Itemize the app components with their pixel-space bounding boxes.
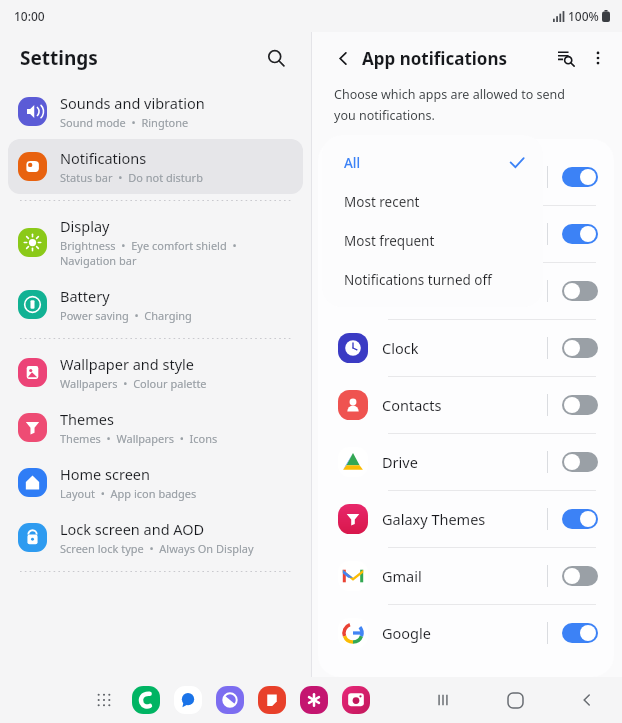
button[interactable]: All xyxy=(322,143,543,182)
button[interactable]: Home screen xyxy=(8,455,303,510)
button[interactable]: Back xyxy=(328,43,358,73)
button[interactable]: Most frequent xyxy=(322,221,543,260)
staticText: Status bar • Do not disturb xyxy=(60,170,203,185)
button[interactable]: phone xyxy=(132,686,160,714)
staticText: Display xyxy=(60,216,110,236)
staticText: Sounds and vibration xyxy=(60,93,205,113)
button[interactable]: Toggle xyxy=(562,281,598,301)
button[interactable]: Themes xyxy=(8,400,303,455)
button[interactable]: Contacts xyxy=(318,377,614,433)
button[interactable]: flower xyxy=(300,686,328,714)
button[interactable]: Lock screen and AOD xyxy=(8,510,303,565)
staticText: Most recent xyxy=(344,193,525,211)
button[interactable]: Display xyxy=(8,207,303,277)
staticText: Themes • Wallpapers • Icons xyxy=(60,431,218,446)
staticText: Contacts xyxy=(382,395,547,415)
button[interactable]: insta xyxy=(342,686,370,714)
button[interactable]: App drawer xyxy=(90,686,118,714)
staticText: Sound mode • Ringtone xyxy=(60,115,189,130)
staticText: Camera xyxy=(382,224,547,244)
staticText: Drive xyxy=(382,452,547,472)
button[interactable]: Sounds and vibration xyxy=(8,84,303,139)
button[interactable]: internet xyxy=(216,686,244,714)
button[interactable]: Galaxy Themes xyxy=(318,491,614,547)
button[interactable]: files xyxy=(258,686,286,714)
staticText: Most frequent xyxy=(344,232,525,250)
staticText: Brightness • Eye comfort shield • Naviga… xyxy=(60,238,237,268)
staticText: Power saving • Charging xyxy=(60,308,192,323)
staticText: All xyxy=(344,154,509,172)
button[interactable]: messages xyxy=(174,686,202,714)
button[interactable]: Search xyxy=(259,41,293,75)
staticText: Notifications turned off xyxy=(344,271,525,289)
button[interactable]: Toggle xyxy=(562,623,598,643)
staticText: Wallpaper and style xyxy=(60,354,194,374)
staticText: Home screen xyxy=(60,464,150,484)
button[interactable]: Toggle xyxy=(562,167,598,187)
button[interactable]: Back xyxy=(572,685,602,715)
staticText: Wallpapers • Colour palette xyxy=(60,376,207,391)
button[interactable]: Notifications turned off xyxy=(322,260,543,299)
button[interactable]: Battery xyxy=(8,277,303,332)
staticText: Choose which apps are allowed to send yo… xyxy=(334,86,582,123)
button[interactable]: Most recent xyxy=(322,182,543,221)
staticText: Gmail xyxy=(382,566,547,586)
staticText: Battery xyxy=(60,286,110,306)
button[interactable]: Notifications xyxy=(8,139,303,194)
button[interactable]: Toggle xyxy=(562,566,598,586)
staticText: 10:00 xyxy=(14,8,45,24)
staticText: Layout • App icon badges xyxy=(60,486,197,501)
button[interactable]: Toggle xyxy=(562,224,598,244)
button[interactable]: Camera xyxy=(318,206,614,262)
staticText: Clock xyxy=(382,338,547,358)
button[interactable]: Google xyxy=(318,605,614,661)
staticText: Chrome xyxy=(382,281,547,301)
staticText: Google xyxy=(382,623,547,643)
button[interactable]: Clock xyxy=(318,320,614,376)
staticText: Notifications xyxy=(60,148,147,168)
staticText: Screen lock type • Always On Display xyxy=(60,541,254,556)
staticText: Galaxy Themes xyxy=(382,509,547,529)
button[interactable]: Chrome xyxy=(318,263,614,319)
staticText: Themes xyxy=(60,409,114,429)
staticText: App notifications xyxy=(362,47,508,70)
button[interactable]: Search in list xyxy=(550,42,582,74)
button[interactable]: Recents xyxy=(428,685,458,715)
button[interactable]: Toggle xyxy=(562,338,598,358)
button[interactable]: Wallpaper and style xyxy=(8,345,303,400)
button[interactable]: Toggle xyxy=(562,452,598,472)
button[interactable]: More options xyxy=(582,42,614,74)
staticText: Settings xyxy=(20,45,98,71)
button[interactable]: Drive xyxy=(318,434,614,490)
staticText: 100% xyxy=(568,8,599,24)
button[interactable]: Gmail xyxy=(318,548,614,604)
staticText: Lock screen and AOD xyxy=(60,519,205,539)
staticText: Calendar xyxy=(382,167,547,187)
button[interactable]: Toggle xyxy=(562,509,598,529)
button[interactable]: Home xyxy=(500,685,530,715)
button[interactable]: Calendar xyxy=(318,149,614,205)
button[interactable]: Toggle xyxy=(562,395,598,415)
